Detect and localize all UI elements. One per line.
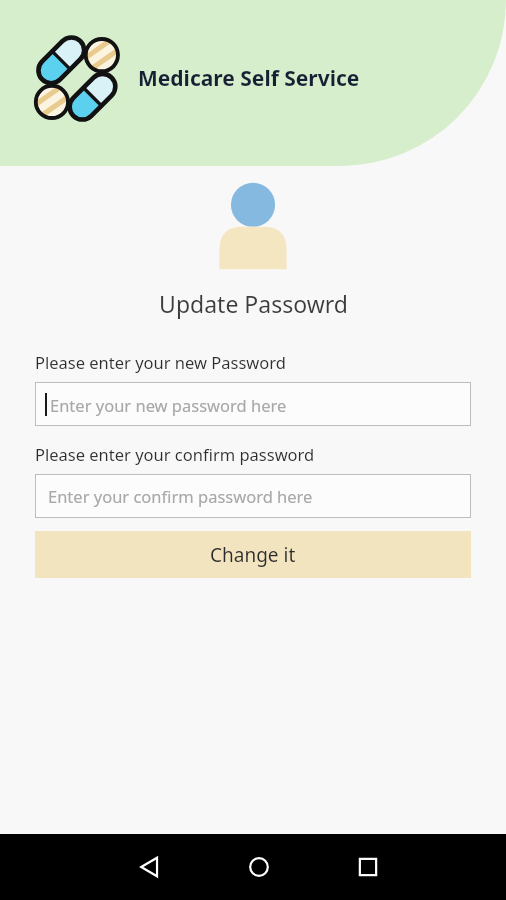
staticText: Change it	[210, 542, 296, 568]
button[interactable]: Enter your confirm password here	[35, 474, 471, 518]
button[interactable]: Back	[95, 834, 204, 900]
staticText: Enter your new password here	[50, 394, 287, 416]
button[interactable]: Recents	[313, 834, 422, 900]
button[interactable]: Change it	[35, 531, 471, 578]
staticText: Medicare Self Service	[138, 64, 360, 93]
staticText: Enter your confirm password here	[48, 485, 313, 507]
button[interactable]: Home	[204, 834, 313, 900]
staticText: Update Passowrd	[159, 288, 348, 319]
staticText: Please enter your confirm password	[35, 443, 315, 465]
button[interactable]: Enter your new password here	[35, 382, 471, 426]
staticText: Please enter your new Password	[35, 351, 286, 373]
